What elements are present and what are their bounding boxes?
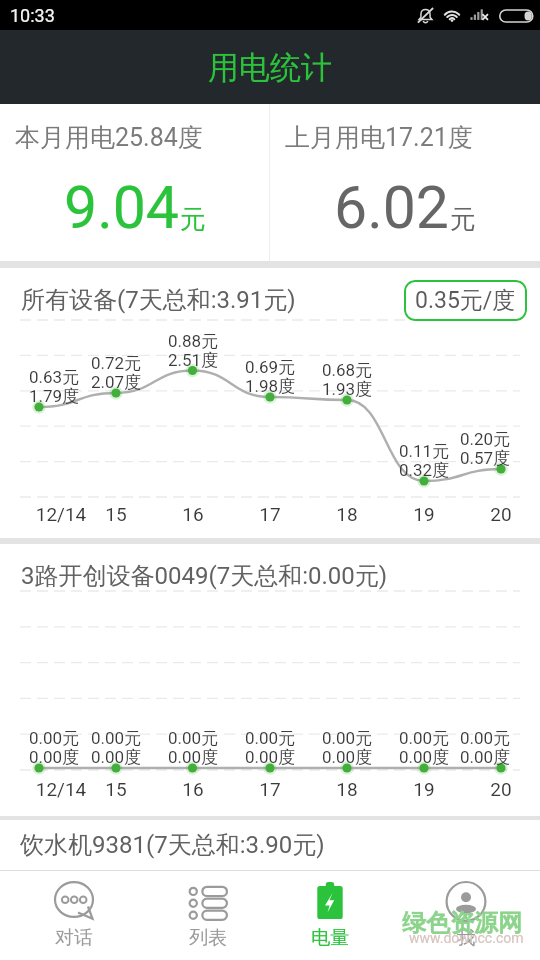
staticText: 列表 bbox=[148, 926, 268, 950]
button[interactable]: 本月用电25.84度 bbox=[0, 104, 269, 261]
staticText: 19 bbox=[374, 503, 474, 525]
button[interactable]: 电量 bbox=[270, 871, 390, 960]
staticText: 17 bbox=[220, 503, 320, 525]
staticText: 15 bbox=[66, 778, 166, 800]
staticText: 10:33 bbox=[10, 5, 55, 26]
staticText: 17 bbox=[220, 778, 320, 800]
staticText: 对话 bbox=[14, 926, 134, 950]
staticText: 0.69元 1.98度 bbox=[220, 357, 320, 397]
staticText: 元 bbox=[180, 203, 206, 236]
button[interactable]: 0.35元/度 bbox=[404, 280, 527, 321]
staticText: 元 bbox=[450, 203, 476, 236]
staticText: 饮水机9381(7天总和:3.90元) bbox=[20, 830, 325, 860]
staticText: 18 bbox=[297, 503, 397, 525]
staticText: 9.04 bbox=[64, 173, 180, 242]
other: 对话 bbox=[51, 882, 97, 922]
staticText: www.downcc.com bbox=[409, 930, 524, 946]
button[interactable]: 我 bbox=[406, 871, 526, 960]
staticText: 12/14 bbox=[11, 778, 111, 800]
staticText: 16 bbox=[143, 778, 243, 800]
staticText: 用电统计 bbox=[208, 48, 332, 87]
other: 电量 bbox=[307, 882, 353, 922]
staticText: 0.35元/度 bbox=[415, 286, 516, 315]
staticText: 0.11元 0.32度 bbox=[374, 441, 474, 481]
staticText: 0.00元 0.00度 bbox=[4, 728, 104, 768]
other: 我 bbox=[443, 882, 489, 922]
staticText: 绿色资源网 bbox=[402, 908, 522, 938]
staticText: 19 bbox=[374, 778, 474, 800]
staticText: 0.00元 0.00度 bbox=[66, 728, 166, 768]
staticText: 6.02 bbox=[334, 173, 450, 242]
staticText: 0.63元 1.79度 bbox=[4, 367, 104, 407]
staticText: 所有设备(7天总和:3.91元) bbox=[21, 285, 296, 315]
staticText: 0.72元 2.07度 bbox=[66, 353, 166, 393]
staticText: 20 bbox=[451, 503, 540, 525]
button[interactable]: 列表 bbox=[148, 871, 268, 960]
staticText: 16 bbox=[143, 503, 243, 525]
button[interactable]: 上月用电17.21度 bbox=[270, 104, 540, 261]
staticText: 0.00元 0.00度 bbox=[435, 728, 535, 768]
staticText: 18 bbox=[297, 778, 397, 800]
staticText: 0.88元 2.51度 bbox=[143, 331, 243, 371]
other: 列表 bbox=[185, 882, 231, 922]
staticText: 0.68元 1.93度 bbox=[297, 360, 397, 400]
staticText: 本月用电25.84度 bbox=[15, 122, 203, 153]
staticText: 12/14 bbox=[11, 503, 111, 525]
staticText: 15 bbox=[66, 503, 166, 525]
staticText: 我 bbox=[406, 926, 526, 950]
staticText: 3路开创设备0049(7天总和:0.00元) bbox=[21, 561, 388, 591]
staticText: 20 bbox=[451, 778, 540, 800]
staticText: 上月用电17.21度 bbox=[285, 122, 473, 153]
staticText: 0.00元 0.00度 bbox=[143, 728, 243, 768]
staticText: 电量 bbox=[270, 926, 390, 950]
staticText: 0.00元 0.00度 bbox=[220, 728, 320, 768]
staticText: 0.00元 0.00度 bbox=[297, 728, 397, 768]
button[interactable]: 对话 bbox=[14, 871, 134, 960]
staticText: 0.00元 0.00度 bbox=[374, 728, 474, 768]
staticText: 0.20元 0.57度 bbox=[435, 429, 535, 469]
